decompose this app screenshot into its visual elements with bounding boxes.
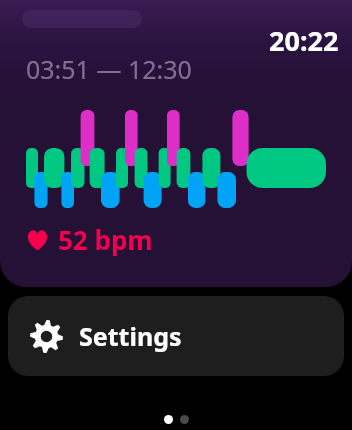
other: Settings: [30, 320, 63, 353]
button[interactable]: 03:51 — 12:30: [0, 0, 352, 287]
staticText: 03:51 — 12:30: [26, 52, 192, 86]
button[interactable]: Settings: [8, 296, 344, 376]
staticText: 20:22: [269, 22, 339, 59]
staticText: Settings: [79, 319, 182, 353]
staticText: 52 bpm: [58, 222, 153, 257]
